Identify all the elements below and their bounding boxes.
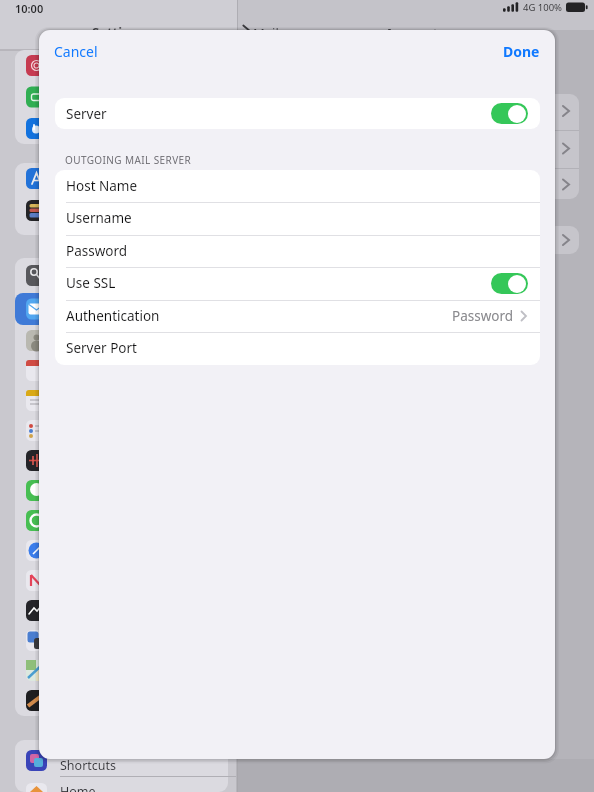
button[interactable]: Authentication (55, 300, 540, 332)
staticText: OUTGOING MAIL SERVER (65, 153, 192, 167)
staticText: Username (66, 209, 132, 227)
button[interactable] (491, 103, 528, 124)
button[interactable]: Host Name (55, 170, 540, 202)
button[interactable]: Password (55, 235, 540, 267)
staticText: Done (503, 42, 540, 61)
staticText: Home (60, 783, 96, 792)
button[interactable]: Username (55, 202, 540, 234)
staticText: Password (66, 242, 128, 260)
button[interactable]: Server Port (55, 332, 540, 364)
staticText: Cancel (54, 42, 98, 61)
button[interactable]: Server (55, 98, 540, 129)
button[interactable]: Done (450, 39, 540, 63)
staticText: Password (452, 307, 514, 325)
staticText: Server (66, 105, 107, 123)
button[interactable]: Use SSL (55, 267, 540, 299)
staticText: Server Port (66, 339, 137, 357)
staticText: Settings (92, 23, 146, 41)
staticText: Accounts (385, 24, 445, 42)
staticText: Use SSL (66, 274, 116, 292)
button[interactable] (491, 273, 528, 294)
staticText: Shortcuts (60, 757, 117, 774)
staticText: Mail (253, 24, 279, 42)
staticText: 4G 100% (523, 1, 563, 14)
staticText: Authentication (66, 307, 160, 325)
button[interactable]: Cancel (54, 39, 98, 63)
staticText: Host Name (66, 177, 138, 195)
staticText: 10:00 (15, 1, 44, 16)
